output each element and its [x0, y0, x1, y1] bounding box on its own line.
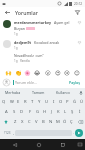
- staticText: 😮: [45, 70, 51, 76]
- button[interactable]: merdanesmerturkey: [0, 18, 85, 38]
- button[interactable]: Filter: [73, 8, 82, 17]
- staticText: Ş: [71, 109, 74, 115]
- button[interactable]: Kullanıcı: [51, 88, 76, 97]
- staticText: Y: [38, 99, 41, 105]
- button[interactable]: X: [19, 117, 26, 127]
- staticText: R: [24, 99, 27, 105]
- button[interactable]: Keyboard: [75, 139, 84, 150]
- button[interactable]: M: [54, 117, 61, 127]
- button[interactable]: Ö: [61, 117, 68, 127]
- staticText: V: [35, 119, 38, 125]
- staticText: I: [53, 99, 55, 105]
- button[interactable]: Send: [75, 129, 83, 137]
- button[interactable]: D: [18, 107, 26, 117]
- button[interactable]: Shift: [0, 117, 11, 127]
- button[interactable]: F: [26, 107, 34, 117]
- button[interactable]: P: [64, 97, 71, 107]
- button[interactable]: T: [29, 97, 36, 107]
- staticText: Ö: [63, 119, 67, 125]
- staticText: Z: [14, 119, 17, 125]
- button[interactable]: 😢: [63, 69, 70, 76]
- button[interactable]: Merhaba: [0, 88, 26, 97]
- staticText: dedjem9t: [14, 40, 32, 45]
- button[interactable]: 😮: [44, 69, 51, 76]
- button[interactable]: Ç: [68, 117, 75, 127]
- button[interactable]: Paylaş: [67, 79, 82, 86]
- staticText: Aşam gel nazım Hisam: [54, 20, 75, 25]
- button[interactable]: ?123: [2, 127, 12, 138]
- button[interactable]: 🙌: [5, 69, 12, 76]
- button[interactable]: G: [34, 107, 41, 117]
- button[interactable]: Like: [77, 20, 82, 25]
- button[interactable]: C: [26, 117, 33, 127]
- button[interactable]: O: [57, 97, 64, 107]
- button[interactable]: A: [2, 107, 10, 117]
- button[interactable]: B: [40, 117, 47, 127]
- staticText: Novadlhoolz cum": [14, 53, 44, 58]
- button[interactable]: L: [62, 107, 69, 117]
- button[interactable]: İ: [76, 107, 83, 117]
- button[interactable]: Ş: [69, 107, 76, 117]
- button[interactable]: J: [48, 107, 55, 117]
- button[interactable]: Recents: [51, 139, 75, 150]
- button[interactable]: Y: [36, 97, 43, 107]
- staticText: Tamam: [32, 90, 45, 95]
- button[interactable]: N: [47, 117, 54, 127]
- staticText: 😍: [55, 70, 61, 76]
- staticText: ,: [13, 130, 15, 135]
- button[interactable]: V: [33, 117, 40, 127]
- button[interactable]: W: [8, 97, 15, 107]
- button[interactable]: H: [41, 107, 48, 117]
- staticText: 20:12: [74, 2, 83, 6]
- button[interactable]: 👏: [15, 69, 22, 76]
- button[interactable]: 😂: [34, 69, 41, 76]
- staticText: M: [56, 119, 60, 125]
- staticText: 😂: [34, 70, 41, 76]
- staticText: U: [45, 99, 49, 105]
- button[interactable]: Like: [77, 40, 82, 45]
- button[interactable]: Period: [72, 127, 75, 138]
- staticText: H: [43, 109, 47, 115]
- button[interactable]: Z: [11, 117, 19, 127]
- button[interactable]: R: [22, 97, 29, 107]
- button[interactable]: 😍: [54, 69, 61, 76]
- staticText: N: [49, 119, 53, 125]
- button[interactable]: dedjem9t: [0, 38, 85, 52]
- staticText: K: [57, 109, 60, 115]
- staticText: İ: [79, 109, 81, 115]
- button[interactable]: Ü: [78, 97, 85, 107]
- staticText: 😢: [64, 70, 70, 76]
- button[interactable]: 🌸: [24, 69, 31, 76]
- staticText: F: [29, 109, 32, 115]
- button[interactable]: Comma: [12, 127, 15, 138]
- staticText: 1g: [14, 32, 18, 36]
- staticText: 1g: [14, 59, 18, 63]
- staticText: 😊: [74, 70, 80, 76]
- button[interactable]: E: [15, 97, 22, 107]
- button[interactable]: K: [55, 107, 62, 117]
- button[interactable]: Tamam: [26, 88, 51, 97]
- staticText: .: [73, 130, 75, 135]
- staticText: J: [51, 109, 53, 115]
- button[interactable]: 😊: [73, 69, 80, 76]
- button[interactable]: Home: [27, 139, 51, 150]
- staticText: E: [17, 99, 20, 105]
- button[interactable]: U: [43, 97, 50, 107]
- staticText: 👏: [15, 70, 22, 76]
- button[interactable]: Ğ: [71, 97, 78, 107]
- staticText: A: [5, 109, 8, 115]
- button[interactable]: S: [10, 107, 18, 117]
- staticText: Kocakod ancak hoşçakdan, eklerlik ve piş…: [34, 40, 75, 45]
- button[interactable]: I: [50, 97, 57, 107]
- staticText: 🌸: [24, 70, 31, 76]
- staticText: Kullanıcı: [56, 90, 71, 95]
- staticText: D: [20, 109, 24, 115]
- button[interactable]: Back: [3, 8, 12, 17]
- staticText: T: [31, 99, 34, 105]
- staticText: Ğ: [73, 99, 77, 105]
- button[interactable]: Voice input: [76, 88, 85, 97]
- button[interactable]: Q: [0, 97, 8, 107]
- button[interactable]: Back: [3, 139, 27, 150]
- button[interactable]: Backspace: [75, 117, 85, 127]
